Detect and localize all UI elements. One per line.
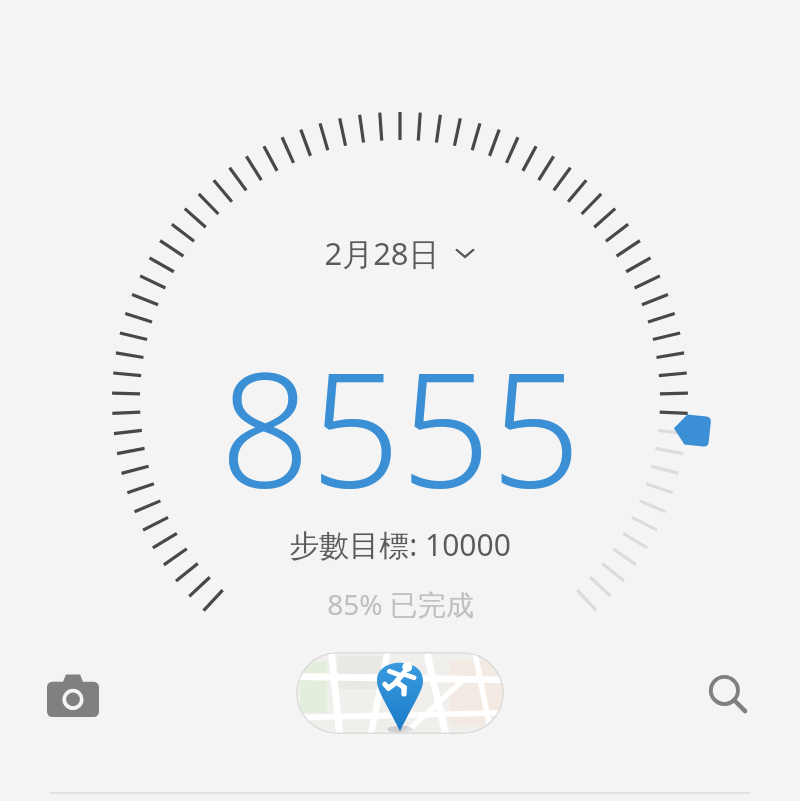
button[interactable]: Search [696, 662, 762, 728]
staticText: 步數目標: 10000 [289, 524, 511, 565]
staticText: 85% 已完成 [327, 585, 474, 623]
button[interactable]: 2月28日 [314, 228, 486, 278]
button[interactable]: Camera [40, 662, 106, 728]
button[interactable]: Route map [296, 652, 504, 734]
staticText: 8555 [220, 318, 581, 533]
staticText: 2月28日 [324, 232, 440, 274]
